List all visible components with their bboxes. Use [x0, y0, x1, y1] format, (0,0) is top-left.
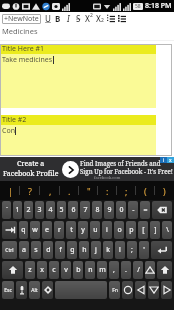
button[interactable]: , — [40, 181, 60, 200]
button[interactable]: x — [37, 261, 47, 279]
button[interactable]: . — [121, 261, 131, 279]
button[interactable]: 9 — [104, 201, 114, 219]
staticText: X — [96, 13, 101, 24]
button[interactable]: n — [85, 261, 95, 279]
staticText: ] — [154, 225, 157, 235]
button[interactable]: U — [43, 12, 53, 25]
staticText: 2 — [90, 12, 93, 19]
button[interactable]: Go — [62, 161, 79, 178]
button[interactable]: b — [73, 261, 83, 279]
button[interactable]: DIAMOND — [42, 281, 53, 299]
button[interactable]: RIGHT — [161, 281, 172, 299]
button[interactable]: 8 — [92, 201, 102, 219]
button[interactable]: c — [49, 261, 59, 279]
button[interactable]: f — [55, 241, 65, 259]
button[interactable]: w — [30, 221, 40, 239]
button[interactable]: v — [61, 261, 71, 279]
button[interactable]: i — [102, 221, 112, 239]
button[interactable]: +NewNote — [2, 14, 41, 24]
staticText: Take medicines — [2, 55, 53, 65]
button[interactable]: , — [109, 261, 119, 279]
button[interactable]: CIRCLE — [122, 281, 133, 299]
button[interactable]: y — [78, 221, 88, 239]
button[interactable]: Close ad — [167, 157, 174, 163]
button[interactable]: I — [63, 12, 73, 25]
button[interactable]: UP — [145, 261, 155, 279]
button[interactable]: l — [115, 241, 125, 259]
button[interactable]: Ad info — [160, 157, 167, 163]
staticText: +NewNote — [4, 14, 39, 24]
button[interactable]: m — [97, 261, 107, 279]
button[interactable]: = — [140, 201, 150, 219]
button[interactable]: s — [31, 241, 41, 259]
button[interactable]: ) — [155, 181, 174, 200]
staticText: Create a — [17, 159, 45, 169]
button[interactable]: Create a — [0, 157, 174, 181]
button[interactable]: " — [79, 181, 98, 200]
button[interactable]: d — [43, 241, 53, 259]
button[interactable]: a — [19, 241, 29, 259]
button[interactable]: \ — [162, 221, 172, 239]
button[interactable]: 3 — [35, 201, 44, 219]
button[interactable]: B — [53, 12, 63, 25]
button[interactable]: 7 — [80, 201, 90, 219]
button[interactable]: e — [42, 221, 52, 239]
button[interactable]: ' — [139, 241, 149, 259]
button[interactable]: / — [133, 261, 143, 279]
button[interactable]: SHIFT — [2, 261, 23, 279]
button[interactable]: Subscript — [94, 12, 105, 25]
button[interactable]: S — [73, 12, 83, 25]
button[interactable]: 1 — [13, 201, 22, 219]
button[interactable]: BACKSPACE — [152, 201, 172, 219]
button[interactable]: ? — [20, 181, 40, 200]
button[interactable]: - — [128, 201, 138, 219]
button[interactable]: q — [19, 221, 28, 239]
button[interactable]: j — [91, 241, 101, 259]
button[interactable]: r — [54, 221, 64, 239]
button[interactable]: [ — [138, 221, 148, 239]
staticText: 6 — [71, 205, 76, 215]
button[interactable]: Fn — [109, 281, 120, 299]
button[interactable]: h — [79, 241, 89, 259]
button[interactable]: DOWN — [148, 281, 159, 299]
button[interactable]: ; — [127, 241, 137, 259]
button[interactable]: Numbered list — [105, 12, 116, 25]
button[interactable]: k — [103, 241, 113, 259]
button[interactable]: g — [67, 241, 77, 259]
button[interactable]: MIC — [16, 281, 27, 299]
button[interactable]: LEFT — [135, 281, 146, 299]
button[interactable]: 2 — [24, 201, 33, 219]
button[interactable]: 0 — [116, 201, 126, 219]
button[interactable]: TAB — [2, 221, 17, 239]
button[interactable]: Title #2 — [0, 115, 156, 156]
button[interactable]: Bulleted list — [116, 12, 127, 25]
button[interactable]: 4 — [46, 201, 55, 219]
staticText: j — [95, 245, 97, 255]
button[interactable]: Esc — [2, 281, 14, 299]
button[interactable]: ; — [117, 181, 136, 200]
staticText: a — [22, 245, 26, 255]
button[interactable]: | — [0, 181, 20, 200]
button[interactable]: SHIFT — [157, 261, 172, 279]
button[interactable]: o — [114, 221, 124, 239]
button[interactable]: Alt — [29, 281, 40, 299]
button[interactable]: p — [126, 221, 136, 239]
button[interactable] — [55, 281, 107, 299]
staticText: " — [87, 185, 91, 197]
button[interactable]: 5 — [57, 201, 66, 219]
button[interactable]: : — [98, 181, 117, 200]
button[interactable]: t — [66, 221, 76, 239]
button[interactable]: 6 — [68, 201, 78, 219]
button[interactable]: Title Here #1 — [0, 44, 156, 108]
button[interactable]: z — [25, 261, 35, 279]
button[interactable]: . — [60, 181, 79, 200]
staticText: i — [163, 157, 165, 163]
button[interactable]: ] — [150, 221, 160, 239]
button[interactable]: ( — [136, 181, 155, 200]
button[interactable]: Superscript — [83, 12, 94, 25]
staticText: . — [68, 185, 71, 197]
button[interactable]: Ctrl — [2, 241, 17, 259]
button[interactable]: ENTER — [151, 241, 172, 259]
button[interactable]: ` — [2, 201, 11, 219]
button[interactable]: u — [90, 221, 100, 239]
